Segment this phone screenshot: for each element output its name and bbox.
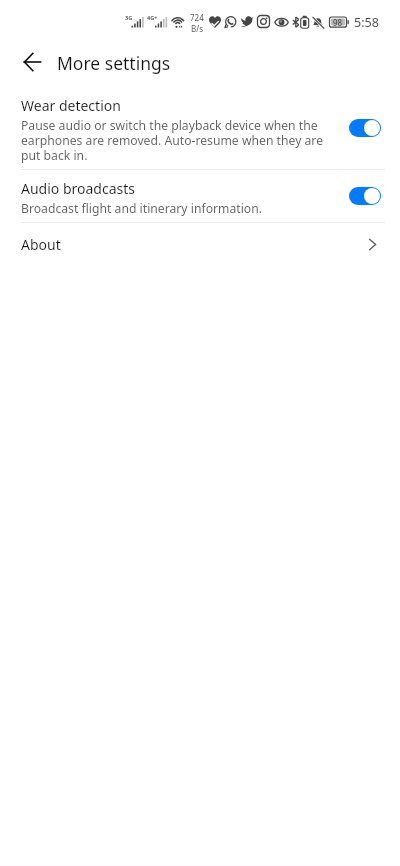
button[interactable]: Wear detection	[0, 86, 400, 169]
staticText: Pause audio or switch the playback devic…	[21, 117, 331, 164]
button[interactable]: Back	[15, 44, 51, 80]
staticText: 3G	[125, 14, 133, 22]
staticText: 5:58	[354, 14, 379, 31]
staticText: More settings	[57, 51, 171, 75]
button[interactable]: Toggle	[349, 187, 381, 205]
staticText: 98	[333, 17, 343, 28]
button[interactable]: Toggle	[349, 119, 381, 137]
staticText: Broadcast flight and itinerary informati…	[21, 200, 262, 217]
staticText: B/s	[191, 23, 204, 34]
staticText: Audio broadcasts	[21, 179, 136, 198]
staticText: 724	[190, 12, 204, 23]
button[interactable]: Audio broadcasts	[0, 169, 400, 222]
button[interactable]: About	[0, 222, 400, 267]
staticText: About	[21, 235, 61, 254]
staticText: 4G+	[147, 14, 158, 22]
staticText: Wear detection	[21, 96, 121, 115]
